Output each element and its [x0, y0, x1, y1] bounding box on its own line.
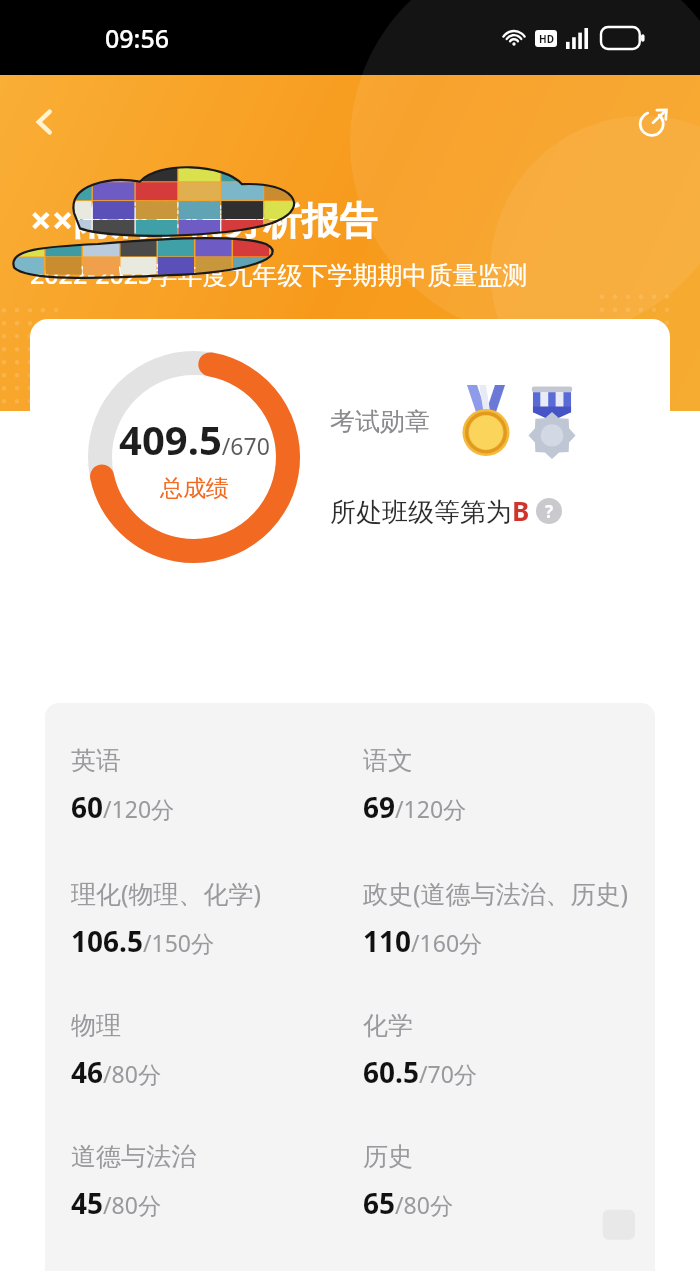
button[interactable]: 政史(道德与法治、历史)	[363, 876, 629, 960]
staticText: 09:56	[105, 21, 170, 55]
staticText: HD	[539, 32, 554, 46]
staticText: 60/120分	[71, 788, 175, 826]
staticText: 语文	[363, 745, 413, 776]
staticText: 理化(物理、化学)	[71, 876, 262, 910]
staticText: 总成绩	[160, 474, 229, 503]
staticText: 409.5/670	[119, 412, 270, 466]
staticText: 110/160分	[363, 922, 483, 960]
staticText: 政史(道德与法治、历史)	[363, 876, 629, 910]
button[interactable]: 理化(物理、化学)	[71, 876, 262, 960]
staticText: 65/80分	[363, 1184, 453, 1222]
staticText: 45/80分	[71, 1184, 161, 1222]
staticText: 英语	[71, 745, 121, 776]
button[interactable]: 返回	[18, 95, 72, 149]
staticText: 60.5/70分	[363, 1053, 477, 1091]
staticText: 道德与法治	[71, 1141, 196, 1172]
staticText: 考试勋章	[330, 406, 430, 437]
staticText: 物理	[71, 1010, 121, 1041]
button[interactable]: 化学	[363, 1010, 477, 1091]
staticText: 历史	[363, 1141, 413, 1172]
staticText: 69/120分	[363, 788, 467, 826]
staticText: 46/80分	[71, 1053, 161, 1091]
staticText: ××附属学情分析报告	[30, 193, 378, 245]
staticText: 106.5/150分	[71, 922, 214, 960]
button[interactable]: 英语	[71, 745, 175, 826]
staticText: ?	[545, 500, 554, 523]
button[interactable]: 409.5/670	[30, 319, 670, 595]
staticText: 所处班级等第为B	[330, 493, 530, 529]
button[interactable]: 历史	[363, 1141, 453, 1222]
staticText: 2022-2023学年度九年级下学期期中质量监测	[30, 257, 528, 291]
button[interactable]: 分享	[626, 95, 680, 149]
button[interactable]: 语文	[363, 745, 467, 826]
button[interactable]: 说明	[536, 498, 562, 524]
staticText: 化学	[363, 1010, 413, 1041]
button[interactable]: 物理	[71, 1010, 161, 1091]
button[interactable]: 道德与法治	[71, 1141, 196, 1222]
